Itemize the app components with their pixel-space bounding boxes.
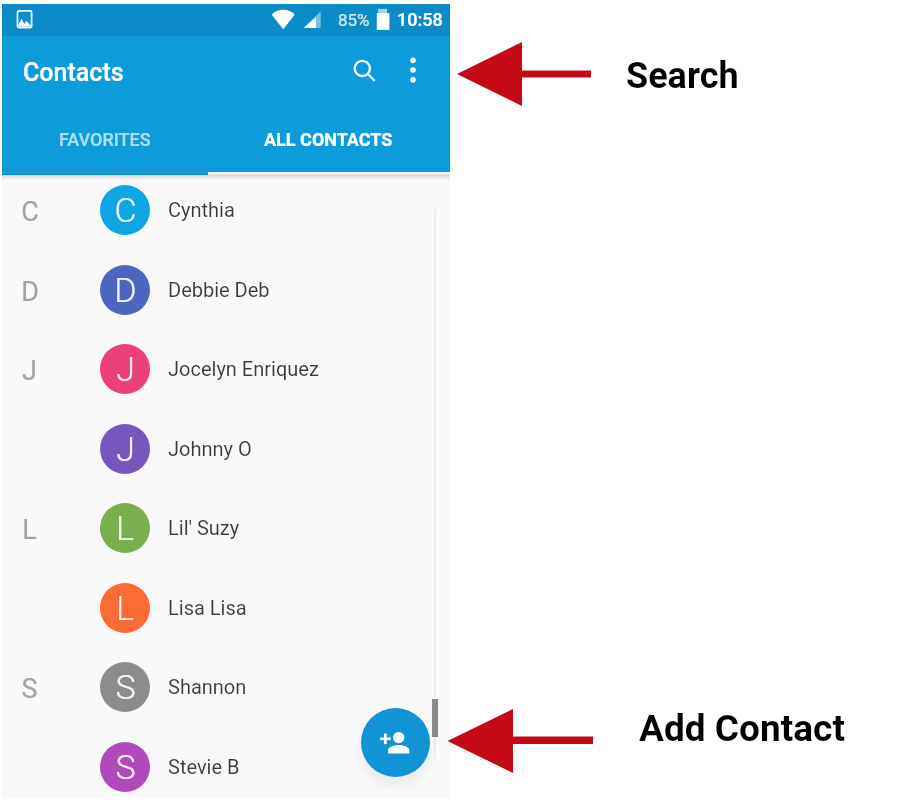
staticText: ALL CONTACTS <box>264 129 393 150</box>
staticText: D <box>21 276 39 308</box>
staticText: 10:58 <box>397 9 443 30</box>
staticText: S <box>21 673 38 705</box>
staticText: 85% <box>338 10 370 30</box>
staticText: J <box>22 355 37 387</box>
staticText: Contacts <box>23 58 124 87</box>
staticText: L <box>22 514 37 546</box>
button[interactable]: L <box>2 568 450 648</box>
button[interactable]: Add contact <box>361 708 430 777</box>
staticText: Add Contact <box>639 707 845 750</box>
staticText: L <box>116 508 134 548</box>
staticText: Stevie B <box>168 755 240 778</box>
button[interactable]: ALL CONTACTS <box>208 121 450 175</box>
staticText: J <box>116 429 135 469</box>
staticText: FAVORITES <box>59 129 151 150</box>
button[interactable]: More options <box>389 46 437 94</box>
staticText: S <box>115 747 136 787</box>
staticText: Lisa Lisa <box>168 596 247 619</box>
staticText: C <box>21 196 39 228</box>
staticText: J <box>116 349 135 389</box>
button[interactable]: J <box>2 329 450 409</box>
button[interactable]: Search <box>341 48 391 98</box>
staticText: Jocelyn Enriquez <box>168 357 319 380</box>
staticText: D <box>114 270 137 310</box>
staticText: Johnny O <box>168 437 252 460</box>
staticText: Search <box>626 55 739 97</box>
button[interactable]: L <box>2 488 450 568</box>
staticText: S <box>115 667 136 707</box>
staticText: Debbie Deb <box>168 278 270 301</box>
staticText: L <box>116 588 134 628</box>
button[interactable]: C <box>2 175 450 250</box>
staticText: Shannon <box>168 675 247 698</box>
staticText: Lil' Suzy <box>168 516 240 539</box>
button[interactable]: D <box>2 250 450 330</box>
staticText: C <box>114 190 137 230</box>
button[interactable]: S <box>2 727 450 798</box>
button[interactable]: J <box>2 409 450 489</box>
staticText: Cynthia <box>168 198 235 221</box>
button[interactable]: S <box>2 647 450 727</box>
button[interactable]: FAVORITES <box>2 121 208 175</box>
